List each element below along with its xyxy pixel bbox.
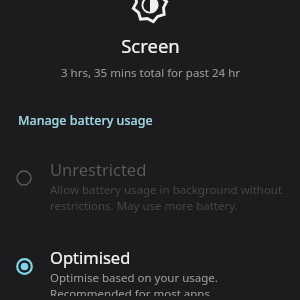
staticText: Screen <box>121 33 180 58</box>
button[interactable]: Optimised <box>0 242 300 300</box>
staticText: 3 hrs, 35 mins total for past 24 hr <box>61 65 240 81</box>
staticText: Manage battery usage <box>18 112 153 129</box>
staticText: Allow battery usage in background withou… <box>50 182 286 214</box>
button[interactable]: Unrestricted <box>0 154 300 218</box>
staticText: Unrestricted <box>50 158 147 180</box>
staticText: Optimised <box>50 246 131 268</box>
staticText: Optimise based on your usage. Recommende… <box>50 270 286 296</box>
button[interactable]: Manage battery usage <box>0 110 171 131</box>
